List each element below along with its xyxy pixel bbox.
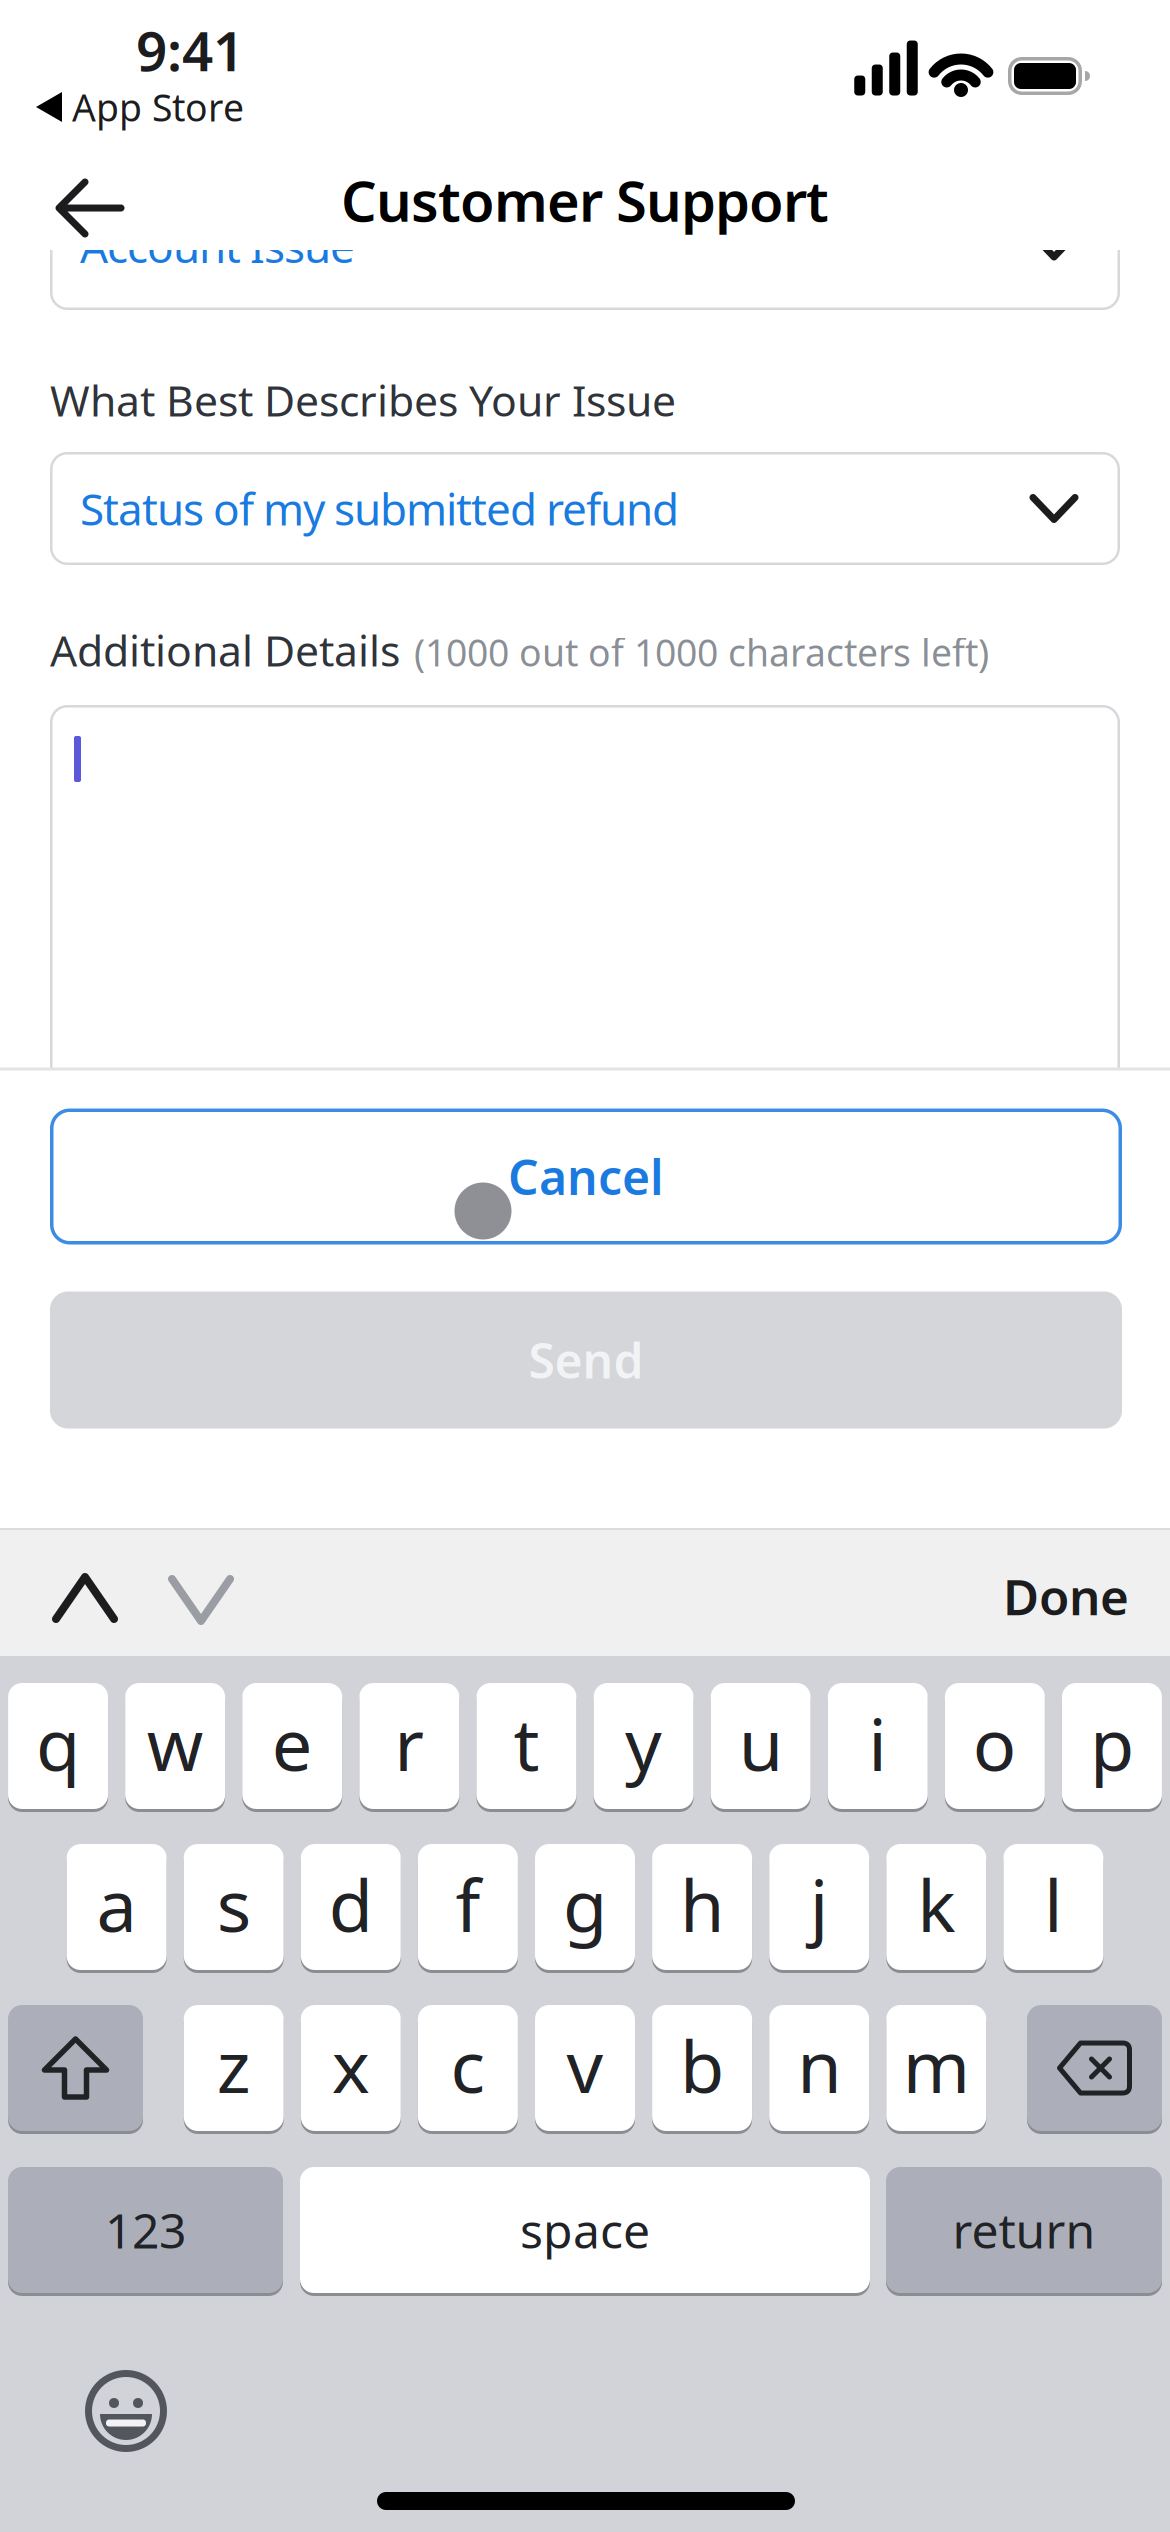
button[interactable]: Status of my submitted refund xyxy=(50,452,1120,565)
button[interactable]: Account Issue xyxy=(50,250,1120,310)
button[interactable]: r xyxy=(359,1681,459,1810)
staticText: d xyxy=(329,1856,373,1952)
button[interactable]: m xyxy=(886,2003,986,2132)
staticText: k xyxy=(917,1856,955,1952)
staticText: (1000 out of 1000 characters left) xyxy=(414,627,989,677)
staticText: g xyxy=(563,1856,607,1952)
staticText: Cancel xyxy=(508,1145,664,1208)
staticText: z xyxy=(217,2017,251,2113)
button[interactable]: 123 xyxy=(8,2165,283,2294)
button[interactable]: s xyxy=(184,1842,284,1971)
staticText: h xyxy=(680,1856,724,1952)
staticText: b xyxy=(680,2017,724,2113)
button[interactable]: Send xyxy=(50,1291,1122,1428)
button[interactable]: Next field xyxy=(172,1579,230,1621)
staticText: Additional Details xyxy=(50,622,400,678)
staticText: Status of my submitted refund xyxy=(80,479,679,538)
button[interactable]: q xyxy=(8,1681,108,1810)
staticText: Send xyxy=(528,1328,643,1392)
button[interactable]: x xyxy=(301,2003,401,2132)
button[interactable]: p xyxy=(1062,1681,1162,1810)
staticText: Customer Support xyxy=(341,163,829,237)
staticText: f xyxy=(455,1856,480,1952)
staticText: x xyxy=(332,2017,370,2113)
staticText: Done xyxy=(1003,1563,1129,1629)
button[interactable]: c xyxy=(418,2003,518,2132)
button[interactable]: h xyxy=(652,1842,752,1971)
button[interactable]: Cancel xyxy=(50,1108,1122,1244)
staticText: m xyxy=(903,2017,970,2113)
button[interactable]: k xyxy=(886,1842,986,1971)
staticText: a xyxy=(97,1856,137,1952)
staticText: e xyxy=(272,1695,313,1791)
button[interactable]: n xyxy=(769,2003,869,2132)
staticText: u xyxy=(739,1695,783,1791)
button[interactable]: j xyxy=(769,1842,869,1971)
staticText: y xyxy=(625,1695,662,1791)
staticText: p xyxy=(1090,1695,1134,1791)
staticText: What Best Describes Your Issue xyxy=(50,372,676,428)
staticText: o xyxy=(973,1695,1017,1791)
staticText: c xyxy=(450,2017,485,2113)
staticText: 9:41 xyxy=(136,14,244,86)
staticText: v xyxy=(566,2017,603,2113)
button[interactable]: Delete xyxy=(1027,2003,1162,2132)
button[interactable]: z xyxy=(184,2003,284,2132)
staticText: return xyxy=(952,2198,1095,2262)
staticText: Account Issue xyxy=(80,217,355,275)
staticText: n xyxy=(797,2017,841,2113)
button[interactable]: u xyxy=(711,1681,811,1810)
button[interactable]: e xyxy=(242,1681,342,1810)
button[interactable]: Back to App Store xyxy=(36,82,244,132)
button[interactable]: Emoji xyxy=(85,2370,167,2452)
staticText: q xyxy=(36,1695,80,1791)
staticText: space xyxy=(520,2198,650,2262)
button[interactable]: space xyxy=(300,2165,870,2294)
button[interactable]: Back xyxy=(55,178,125,238)
button[interactable]: i xyxy=(828,1681,928,1810)
button[interactable]: o xyxy=(945,1681,1045,1810)
button[interactable]: Shift xyxy=(8,2003,143,2132)
staticText: App Store xyxy=(72,82,244,132)
staticText: j xyxy=(810,1856,829,1952)
button[interactable]: f xyxy=(418,1842,518,1971)
button[interactable]: t xyxy=(476,1681,576,1810)
button[interactable]: w xyxy=(125,1681,225,1810)
button[interactable]: b xyxy=(652,2003,752,2132)
staticText: w xyxy=(147,1695,204,1791)
button[interactable]: l xyxy=(1003,1842,1103,1971)
staticText: r xyxy=(394,1695,424,1791)
button[interactable]: v xyxy=(535,2003,635,2132)
staticText: l xyxy=(1044,1856,1063,1952)
staticText: 123 xyxy=(105,2198,186,2262)
staticText: t xyxy=(513,1695,539,1791)
button[interactable]: return xyxy=(886,2165,1162,2294)
button[interactable]: y xyxy=(593,1681,693,1810)
button[interactable]: a xyxy=(67,1842,167,1971)
button[interactable]: Previous field xyxy=(56,1577,114,1619)
button[interactable]: Done xyxy=(1003,1563,1129,1629)
staticText: s xyxy=(217,1856,251,1952)
button[interactable]: d xyxy=(301,1842,401,1971)
button[interactable]: g xyxy=(535,1842,635,1971)
staticText: i xyxy=(868,1695,887,1791)
